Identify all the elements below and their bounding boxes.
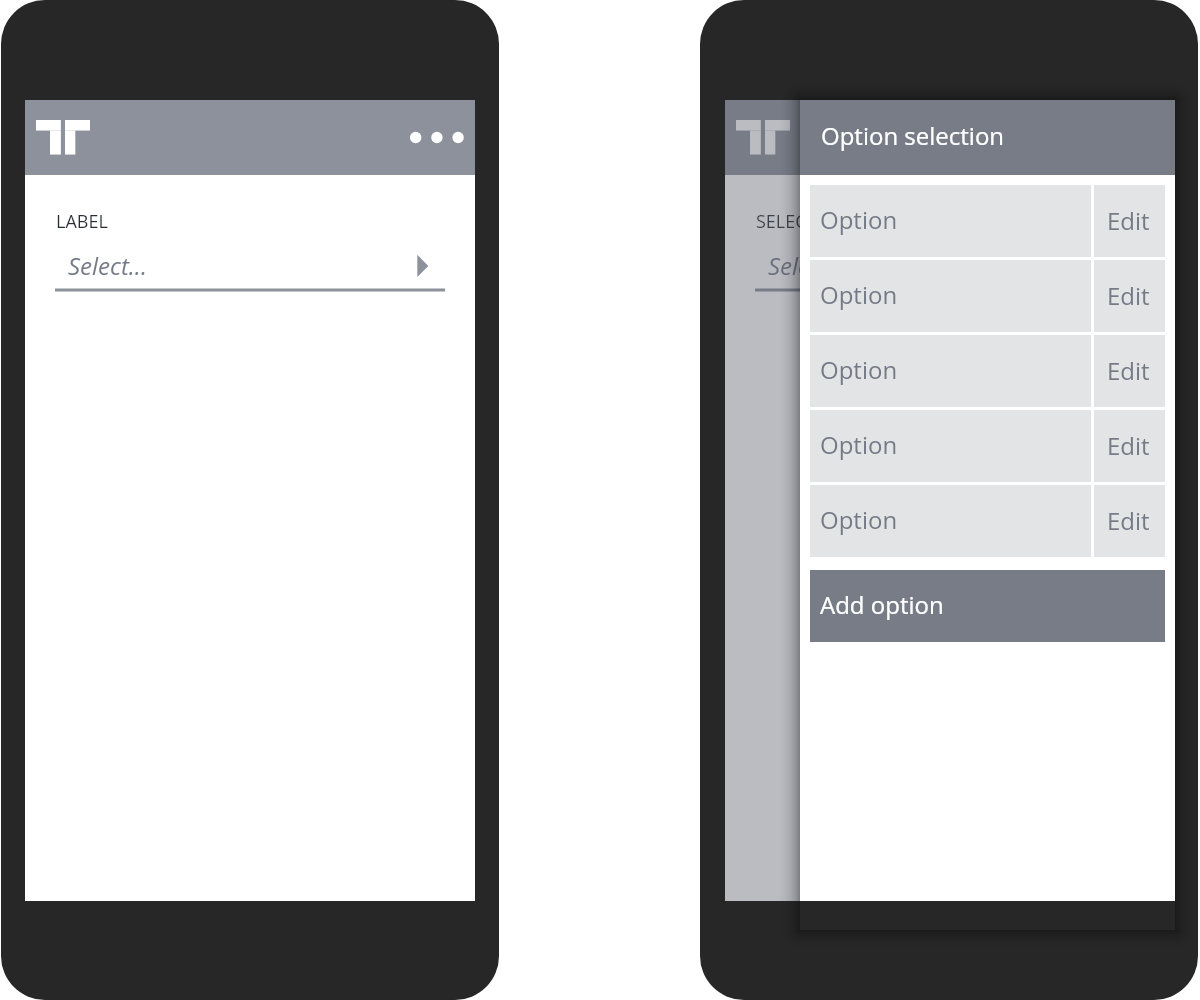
staticText: Select... xyxy=(768,249,847,282)
staticText: Option selection xyxy=(821,119,1005,152)
staticText: Option xyxy=(820,353,898,386)
button[interactable]: Option xyxy=(810,185,1091,257)
button[interactable]: Edit xyxy=(1094,410,1165,482)
staticText: Edit xyxy=(1107,204,1150,237)
button[interactable]: Option xyxy=(810,410,1091,482)
staticText: Option xyxy=(820,203,898,236)
button[interactable]: Edit xyxy=(1094,335,1165,407)
staticText: Edit xyxy=(1107,429,1150,462)
button[interactable]: Edit xyxy=(1094,485,1165,557)
button[interactable]: Option xyxy=(810,260,1091,332)
button[interactable]: Edit xyxy=(1094,260,1165,332)
button[interactable]: Edit xyxy=(1094,185,1165,257)
staticText: Edit xyxy=(1107,504,1150,537)
button[interactable]: Select... xyxy=(55,240,445,292)
staticText: LABEL xyxy=(56,209,108,234)
button[interactable]: Add option xyxy=(810,570,1165,642)
staticText: Option xyxy=(820,278,898,311)
button[interactable]: Option xyxy=(810,485,1091,557)
button[interactable]: Select... xyxy=(755,240,1145,292)
staticText: Option xyxy=(820,503,898,536)
staticText: Select... xyxy=(68,249,147,282)
staticText: Option xyxy=(820,428,898,461)
button[interactable]: More options xyxy=(405,126,470,149)
staticText: SELECT... xyxy=(756,209,831,234)
staticText: Add option xyxy=(820,588,944,621)
staticText: Edit xyxy=(1107,279,1150,312)
button[interactable]: Option xyxy=(810,335,1091,407)
staticText: Edit xyxy=(1107,354,1150,387)
